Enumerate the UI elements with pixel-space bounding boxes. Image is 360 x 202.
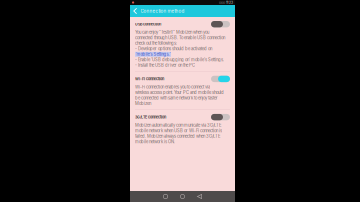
- staticText: Wi-Fi connection enables you to connect …: [135, 84, 210, 89]
- button[interactable]: Back: [191, 191, 208, 202]
- button[interactable]: Back: [130, 5, 141, 17]
- button[interactable]: Recent apps: [157, 191, 174, 202]
- staticText: - Install the USB driver on the PC: [135, 63, 195, 68]
- staticText: 11:23: [226, 1, 233, 4]
- staticText: - Enable 'USB debugging on' mobile's Set…: [135, 57, 224, 62]
- staticText: 'mobile's Settings.': [135, 52, 170, 57]
- staticText: Connection method: [141, 8, 185, 14]
- staticText: - Developer options should be activated …: [135, 46, 212, 51]
- staticText: be connected with same network to enjoy …: [135, 95, 218, 100]
- staticText: 3G/LTE connection: [135, 115, 166, 119]
- button[interactable]: 3G/LTE connection switch: [211, 114, 230, 120]
- staticText: USB connection: [135, 22, 161, 26]
- staticText: mobile network is ON.: [135, 139, 175, 144]
- button[interactable]: USB connection switch: [211, 21, 230, 27]
- staticText: check out the followings:: [135, 41, 177, 46]
- button[interactable]: Wi-Fi connection switch: [211, 76, 230, 82]
- staticText: ▫▫▫: [219, 1, 225, 4]
- staticText: Wi-Fi connection: [135, 77, 164, 81]
- staticText: failed. Mobizen always connected when 3G…: [135, 134, 220, 139]
- staticText: mobile network when USB or Wi-Fi connect…: [135, 128, 222, 133]
- staticText: wireless access point. Your PC and mobil…: [135, 90, 224, 95]
- staticText: You can enjoy "Testin1" Mobizen when you: [135, 30, 209, 35]
- staticText: Mobizen automatically communicate via 3G…: [135, 123, 221, 128]
- button[interactable]: Home: [174, 191, 191, 202]
- staticText: connected through USB. To enable USB con…: [135, 35, 225, 40]
- staticText: Mobizen: [135, 101, 151, 106]
